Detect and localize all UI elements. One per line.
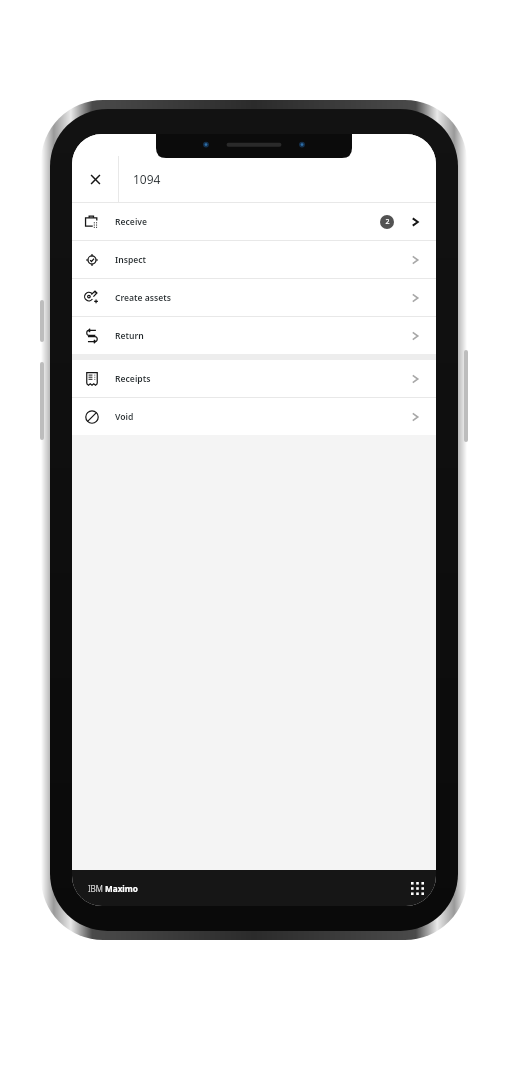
staticText: Create assets	[115, 292, 172, 304]
button[interactable]: Inspect	[72, 241, 436, 278]
staticText: 1094	[133, 171, 161, 187]
staticText: Maximo	[105, 883, 138, 894]
button[interactable]: Receipts	[72, 360, 436, 397]
staticText: Receive	[115, 216, 148, 228]
button[interactable]: Create assets	[72, 279, 436, 316]
staticText: Inspect	[115, 254, 147, 266]
staticText: Receipts	[115, 373, 151, 385]
staticText: Void	[115, 411, 134, 423]
button[interactable]: Void	[72, 398, 436, 435]
staticText: 2	[385, 217, 390, 227]
staticText: IBM	[88, 883, 105, 894]
button[interactable]: Receive	[72, 203, 436, 240]
button[interactable]: App menu	[402, 873, 432, 903]
staticText: Return	[115, 330, 144, 342]
button[interactable]: Return	[72, 317, 436, 354]
button[interactable]: Close	[72, 156, 118, 202]
